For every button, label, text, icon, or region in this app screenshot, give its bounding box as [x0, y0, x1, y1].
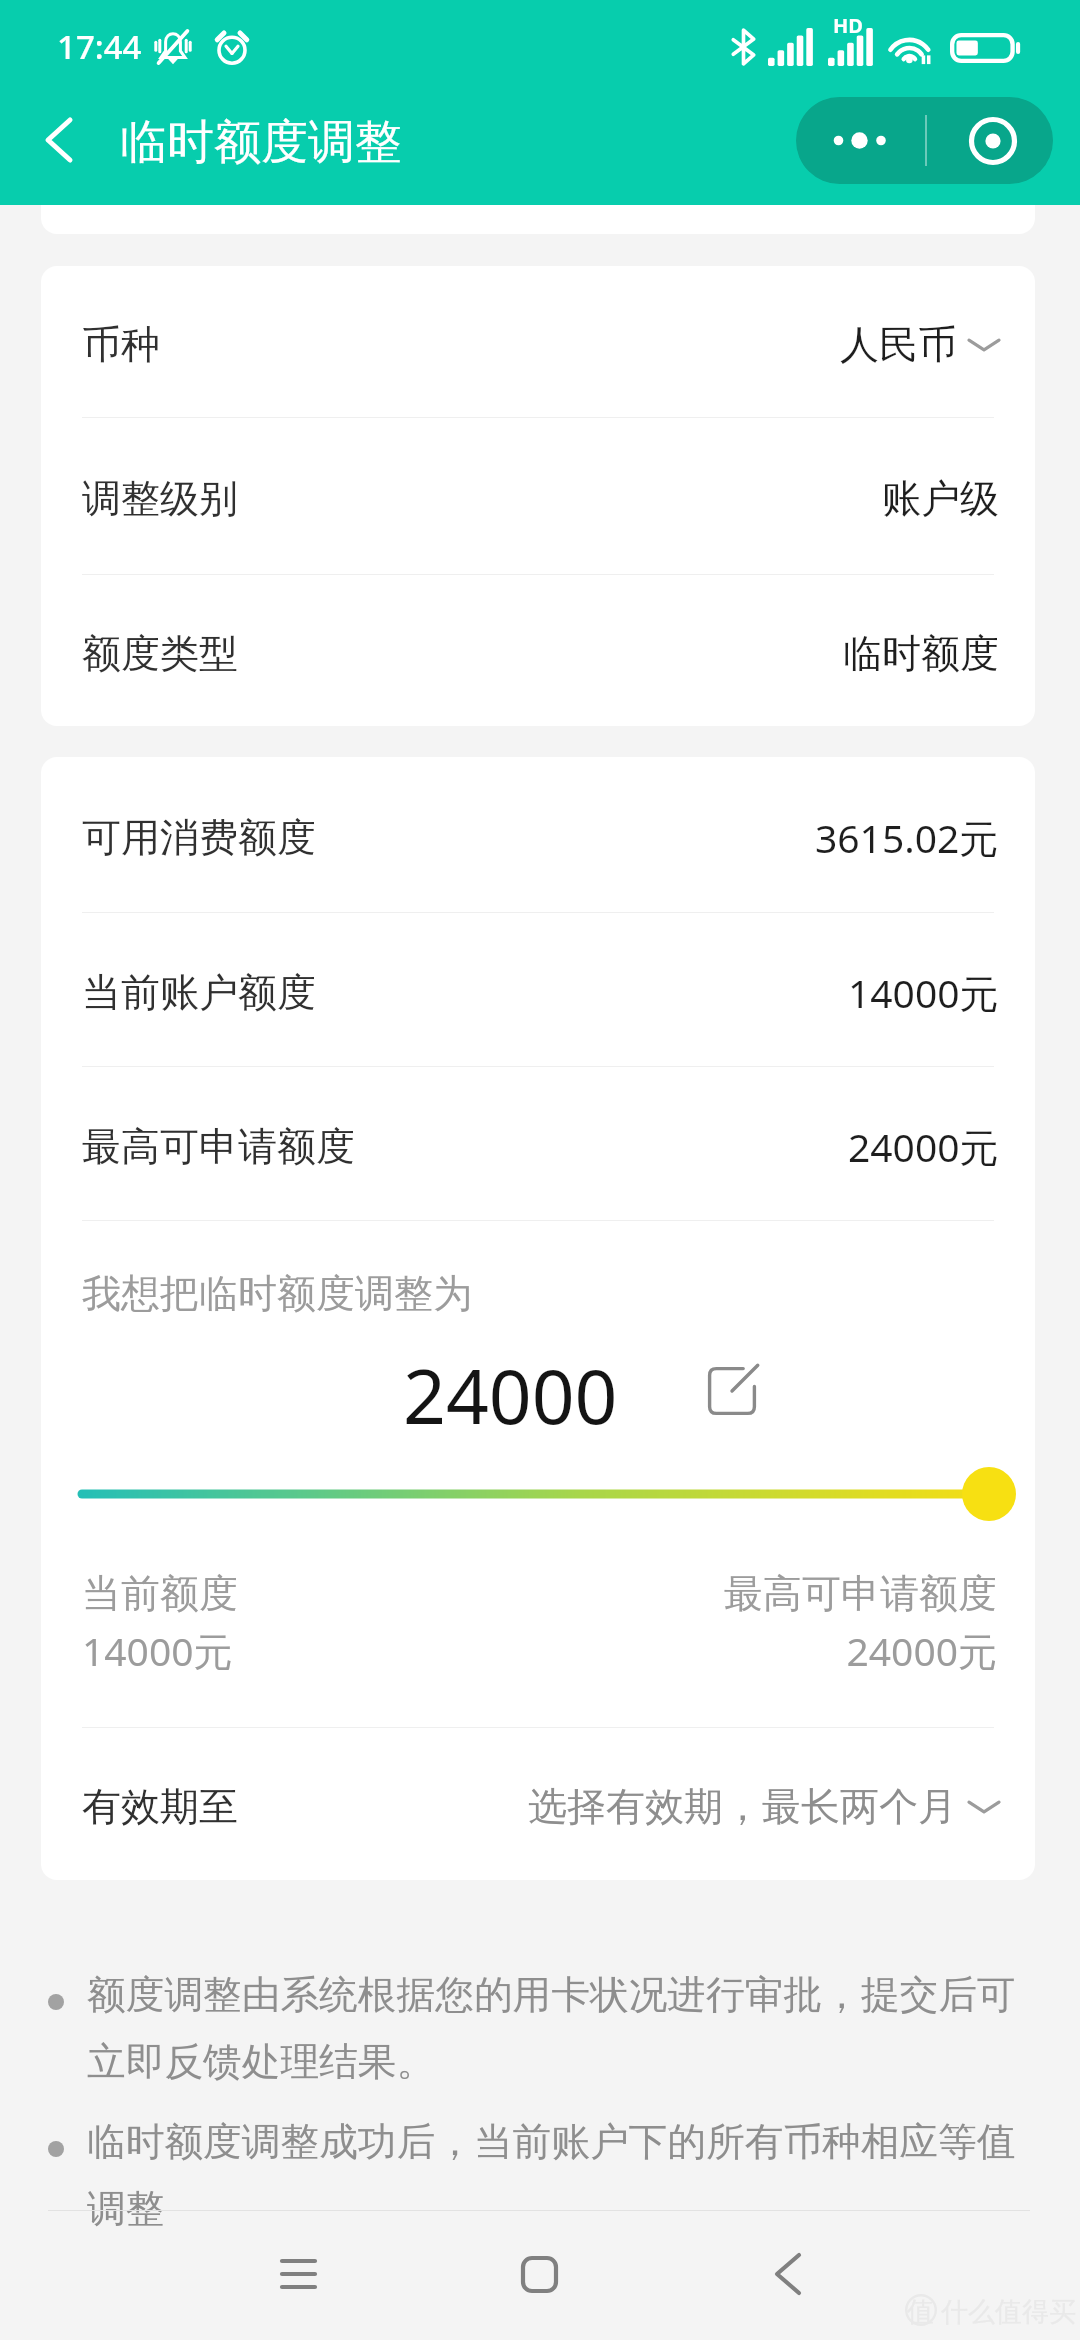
- staticText: 临时额度调整: [120, 113, 402, 172]
- staticText: 最高可申请额度 24000元: [724, 1569, 997, 1677]
- button[interactable]: 币种: [41, 269, 1035, 420]
- staticText: 14000元: [848, 966, 999, 1019]
- button[interactable]: Back: [14, 95, 104, 185]
- button[interactable]: Home: [479, 2214, 599, 2334]
- button[interactable]: 可用消费额度: [41, 760, 1035, 915]
- button[interactable]: 有效期至: [41, 1730, 1035, 1880]
- staticText: HD: [833, 12, 863, 39]
- staticText: 额度类型: [82, 629, 238, 678]
- staticText: 临时额度调整成功后，当前账户下的所有币种相应等值调整: [87, 2118, 1032, 2234]
- staticText: 值 什么值得买: [907, 2292, 1077, 2329]
- button[interactable]: More options: [796, 97, 925, 184]
- staticText: 账户级: [882, 474, 999, 523]
- button[interactable]: 当前账户额度: [41, 915, 1035, 1069]
- staticText: 3615.02元: [815, 811, 999, 864]
- staticText: 当前额度 14000元: [82, 1569, 238, 1677]
- button[interactable]: 调整级别: [41, 420, 1035, 577]
- staticText: 币种: [82, 320, 160, 369]
- button[interactable]: Close mini program: [927, 97, 1053, 184]
- staticText: 我想把临时额度调整为: [82, 1269, 472, 1318]
- staticText: 可用消费额度: [82, 813, 316, 862]
- staticText: 选择有效期，最长两个月: [528, 1782, 957, 1831]
- staticText: 有效期至: [82, 1782, 238, 1831]
- staticText: 17:44: [57, 24, 142, 69]
- staticText: 最高可申请额度: [82, 1122, 355, 1171]
- button[interactable]: Edit amount: [704, 1363, 760, 1419]
- staticText: 24000元: [848, 1120, 999, 1173]
- staticText: 人民币: [840, 320, 957, 369]
- staticText: 调整级别: [82, 474, 238, 523]
- button[interactable]: Back: [728, 2214, 848, 2334]
- staticText: 当前账户额度: [82, 968, 316, 1017]
- button[interactable]: 最高可申请额度: [41, 1069, 1035, 1223]
- button[interactable]: 额度类型: [41, 577, 1035, 726]
- staticText: 24000: [403, 1344, 618, 1446]
- staticText: 临时额度: [843, 629, 999, 678]
- staticText: 额度调整由系统根据您的用卡状况进行审批，提交后可立即反馈处理结果。: [87, 1971, 1032, 2087]
- button[interactable]: Recent apps: [238, 2214, 358, 2334]
